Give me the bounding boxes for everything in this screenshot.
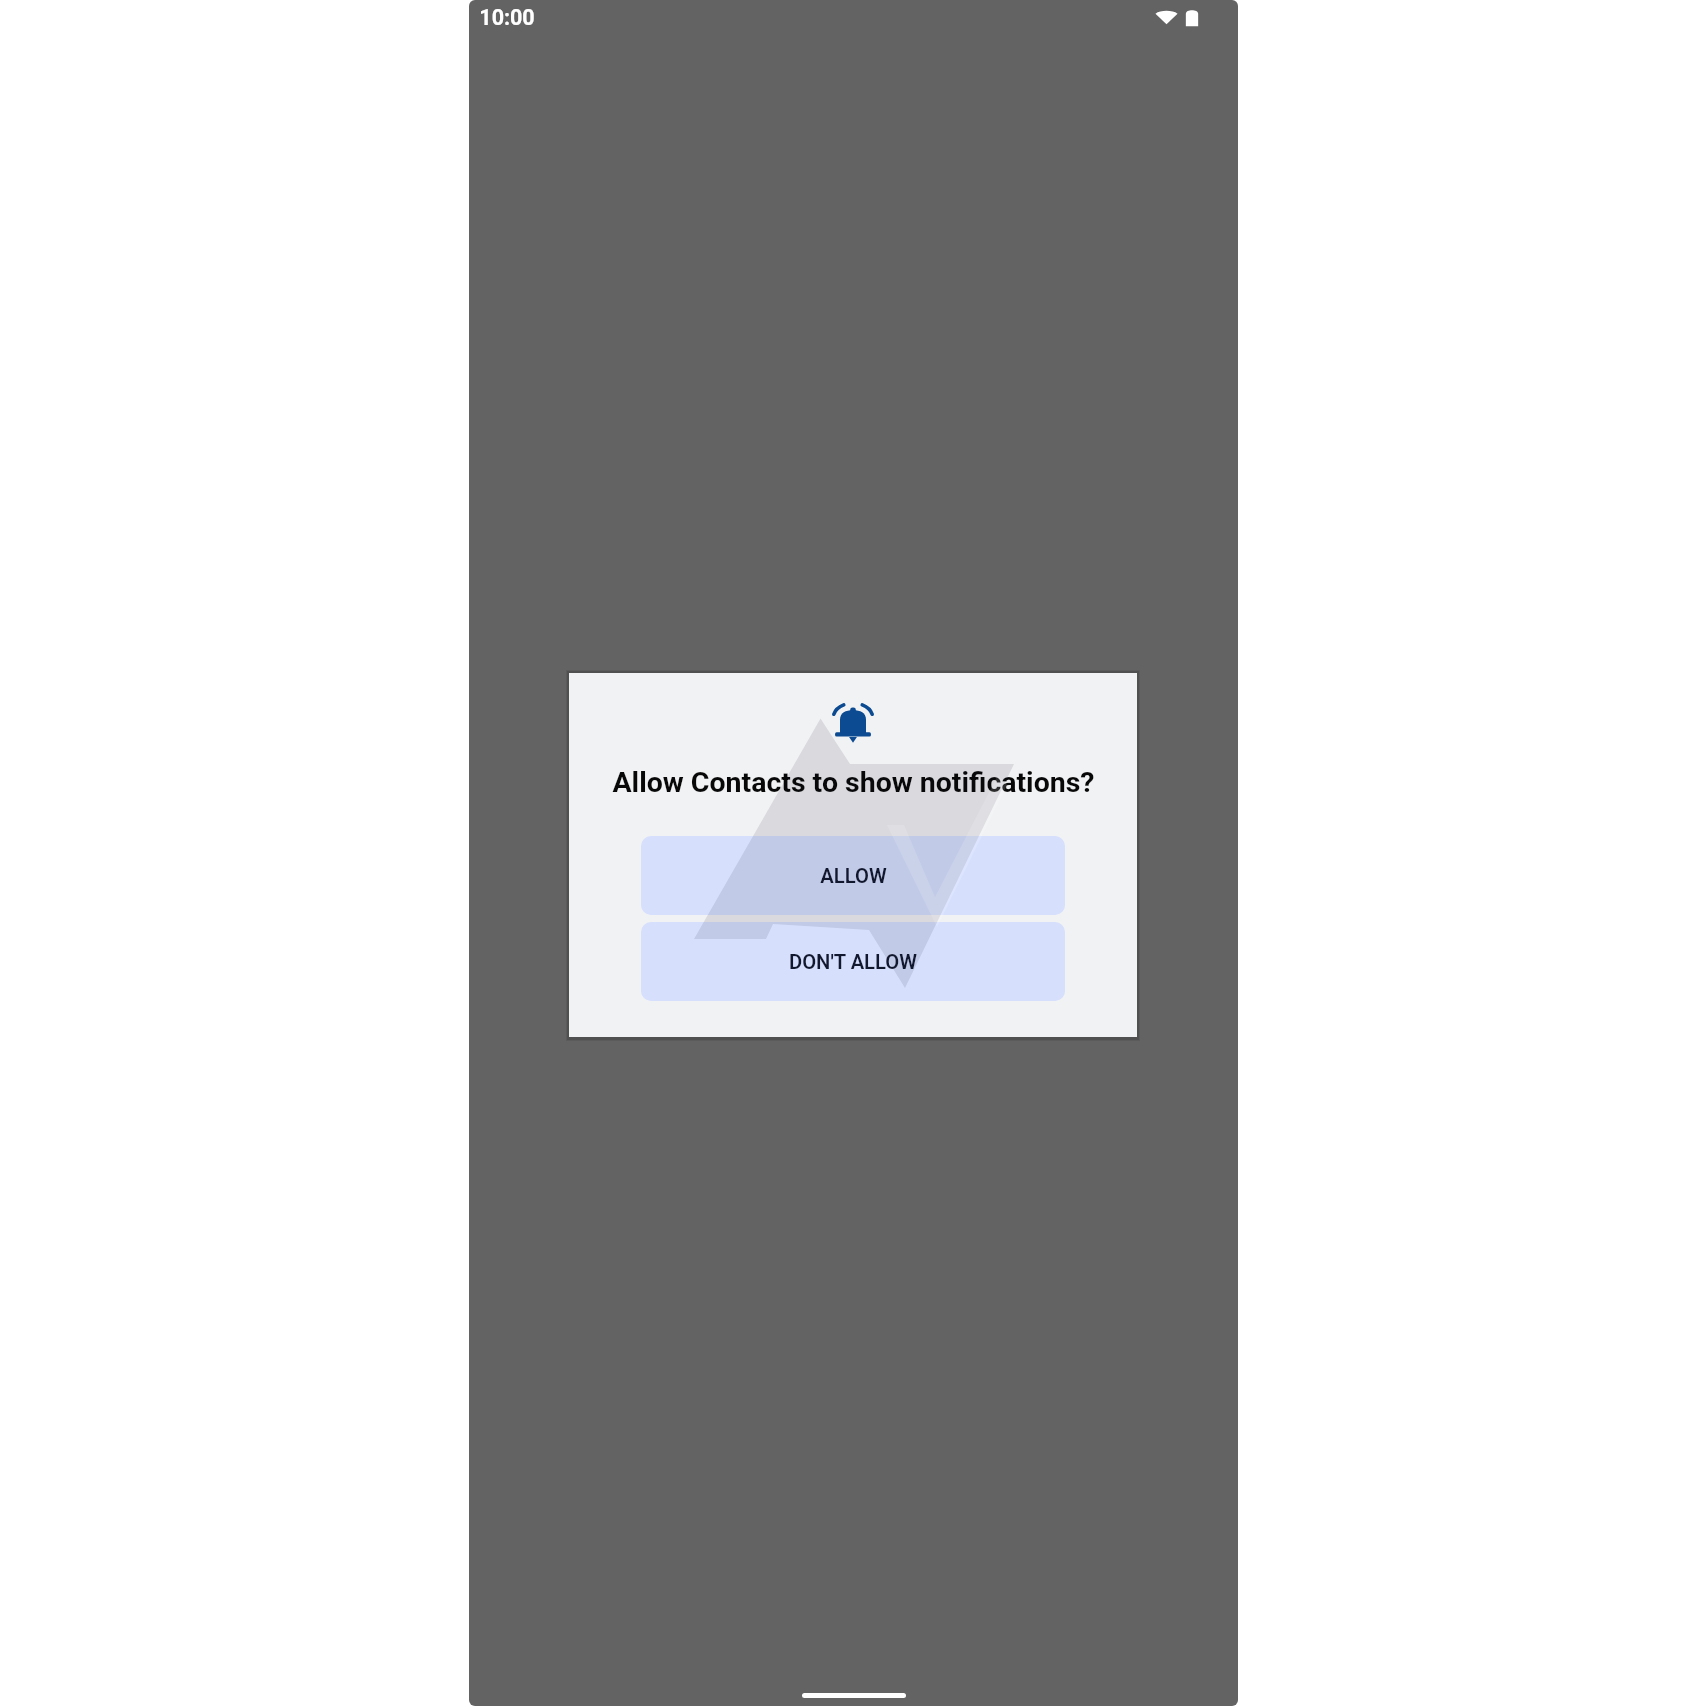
staticText: 10:00	[479, 5, 535, 30]
other: Battery	[1185, 6, 1199, 29]
button[interactable]: DON'T ALLOW	[641, 922, 1065, 1001]
staticText: DON'T ALLOW	[789, 950, 917, 974]
button[interactable]: ALLOW	[641, 836, 1065, 915]
staticText: Allow Contacts to show notifications?	[612, 766, 1095, 799]
other: Wi-Fi	[1155, 8, 1178, 27]
staticText: ALLOW	[820, 864, 887, 888]
